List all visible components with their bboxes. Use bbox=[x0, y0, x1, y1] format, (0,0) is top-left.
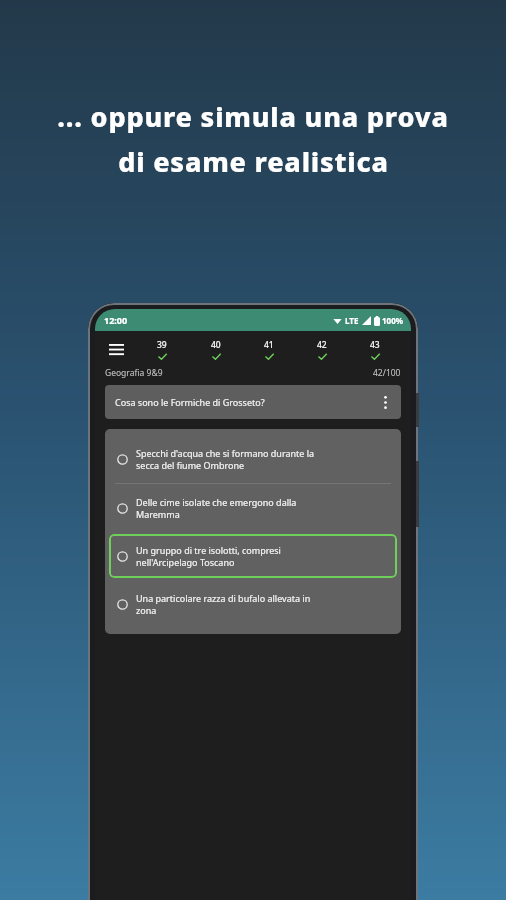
staticText: Cosa sono le Formiche di Grosseto? bbox=[115, 396, 375, 408]
staticText: 43 bbox=[370, 339, 380, 351]
staticText: Una particolare razza di bufalo allevata… bbox=[136, 592, 311, 604]
staticText: Specchi d'acqua che si formano durante l… bbox=[136, 447, 315, 459]
staticText: 39 bbox=[157, 339, 167, 351]
staticText: LTE bbox=[345, 315, 359, 326]
button[interactable]: Cosa sono le Formiche di Grosseto? bbox=[105, 385, 401, 419]
staticText: di esame realistica bbox=[118, 143, 389, 180]
button[interactable]: Un gruppo di tre isolotti, compresi bbox=[109, 534, 397, 578]
button[interactable]: Specchi d'acqua che si formano durante l… bbox=[109, 437, 397, 481]
button[interactable]: 39 bbox=[135, 331, 189, 367]
staticText: Un gruppo di tre isolotti, compresi bbox=[136, 544, 281, 556]
staticText: zona bbox=[136, 604, 157, 616]
staticText: 12:00 bbox=[104, 314, 128, 326]
button[interactable]: 42 bbox=[295, 331, 348, 367]
button[interactable]: Menu bbox=[103, 336, 129, 362]
staticText: 100% bbox=[382, 315, 403, 326]
staticText: Delle cime isolate che emergono dalla bbox=[136, 496, 297, 508]
staticText: 40 bbox=[211, 339, 221, 351]
button[interactable]: Una particolare razza di bufalo allevata… bbox=[109, 582, 397, 626]
button[interactable]: More options bbox=[375, 392, 395, 412]
button[interactable]: 40 bbox=[189, 331, 242, 367]
button[interactable]: 41 bbox=[242, 331, 295, 367]
staticText: 41 bbox=[264, 339, 274, 351]
button[interactable]: 43 bbox=[348, 331, 401, 367]
staticText: Maremma bbox=[136, 508, 180, 520]
staticText: nell'Arcipelago Toscano bbox=[136, 556, 235, 568]
staticText: Geografia 9&9 bbox=[105, 367, 163, 379]
staticText: 42 bbox=[317, 339, 327, 351]
button[interactable]: Delle cime isolate che emergono dalla bbox=[109, 486, 397, 530]
staticText: 42/100 bbox=[373, 367, 401, 379]
staticText: ... oppure simula una prova bbox=[57, 98, 449, 135]
staticText: secca del fiume Ombrone bbox=[136, 459, 245, 471]
